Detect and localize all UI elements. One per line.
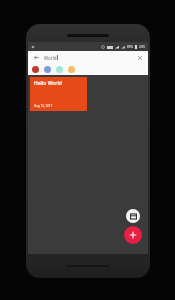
staticText: 2:05 — [139, 45, 145, 49]
button[interactable]: Clear search — [135, 53, 144, 62]
staticText: Aug 14, 2017 — [34, 104, 53, 108]
staticText: 85% — [127, 45, 133, 49]
button[interactable]: Colour filter — [32, 66, 39, 73]
button[interactable]: Add note — [124, 226, 142, 244]
button[interactable]: Back — [32, 53, 41, 62]
staticText: World — [44, 55, 57, 61]
button[interactable]: Colour filter — [44, 66, 51, 73]
button[interactable]: Hello World — [30, 77, 87, 111]
button[interactable]: Colour filter — [56, 66, 63, 73]
button[interactable]: Colour filter — [68, 66, 75, 73]
button[interactable]: Archive — [126, 209, 140, 223]
staticText: Hello World — [34, 80, 62, 87]
